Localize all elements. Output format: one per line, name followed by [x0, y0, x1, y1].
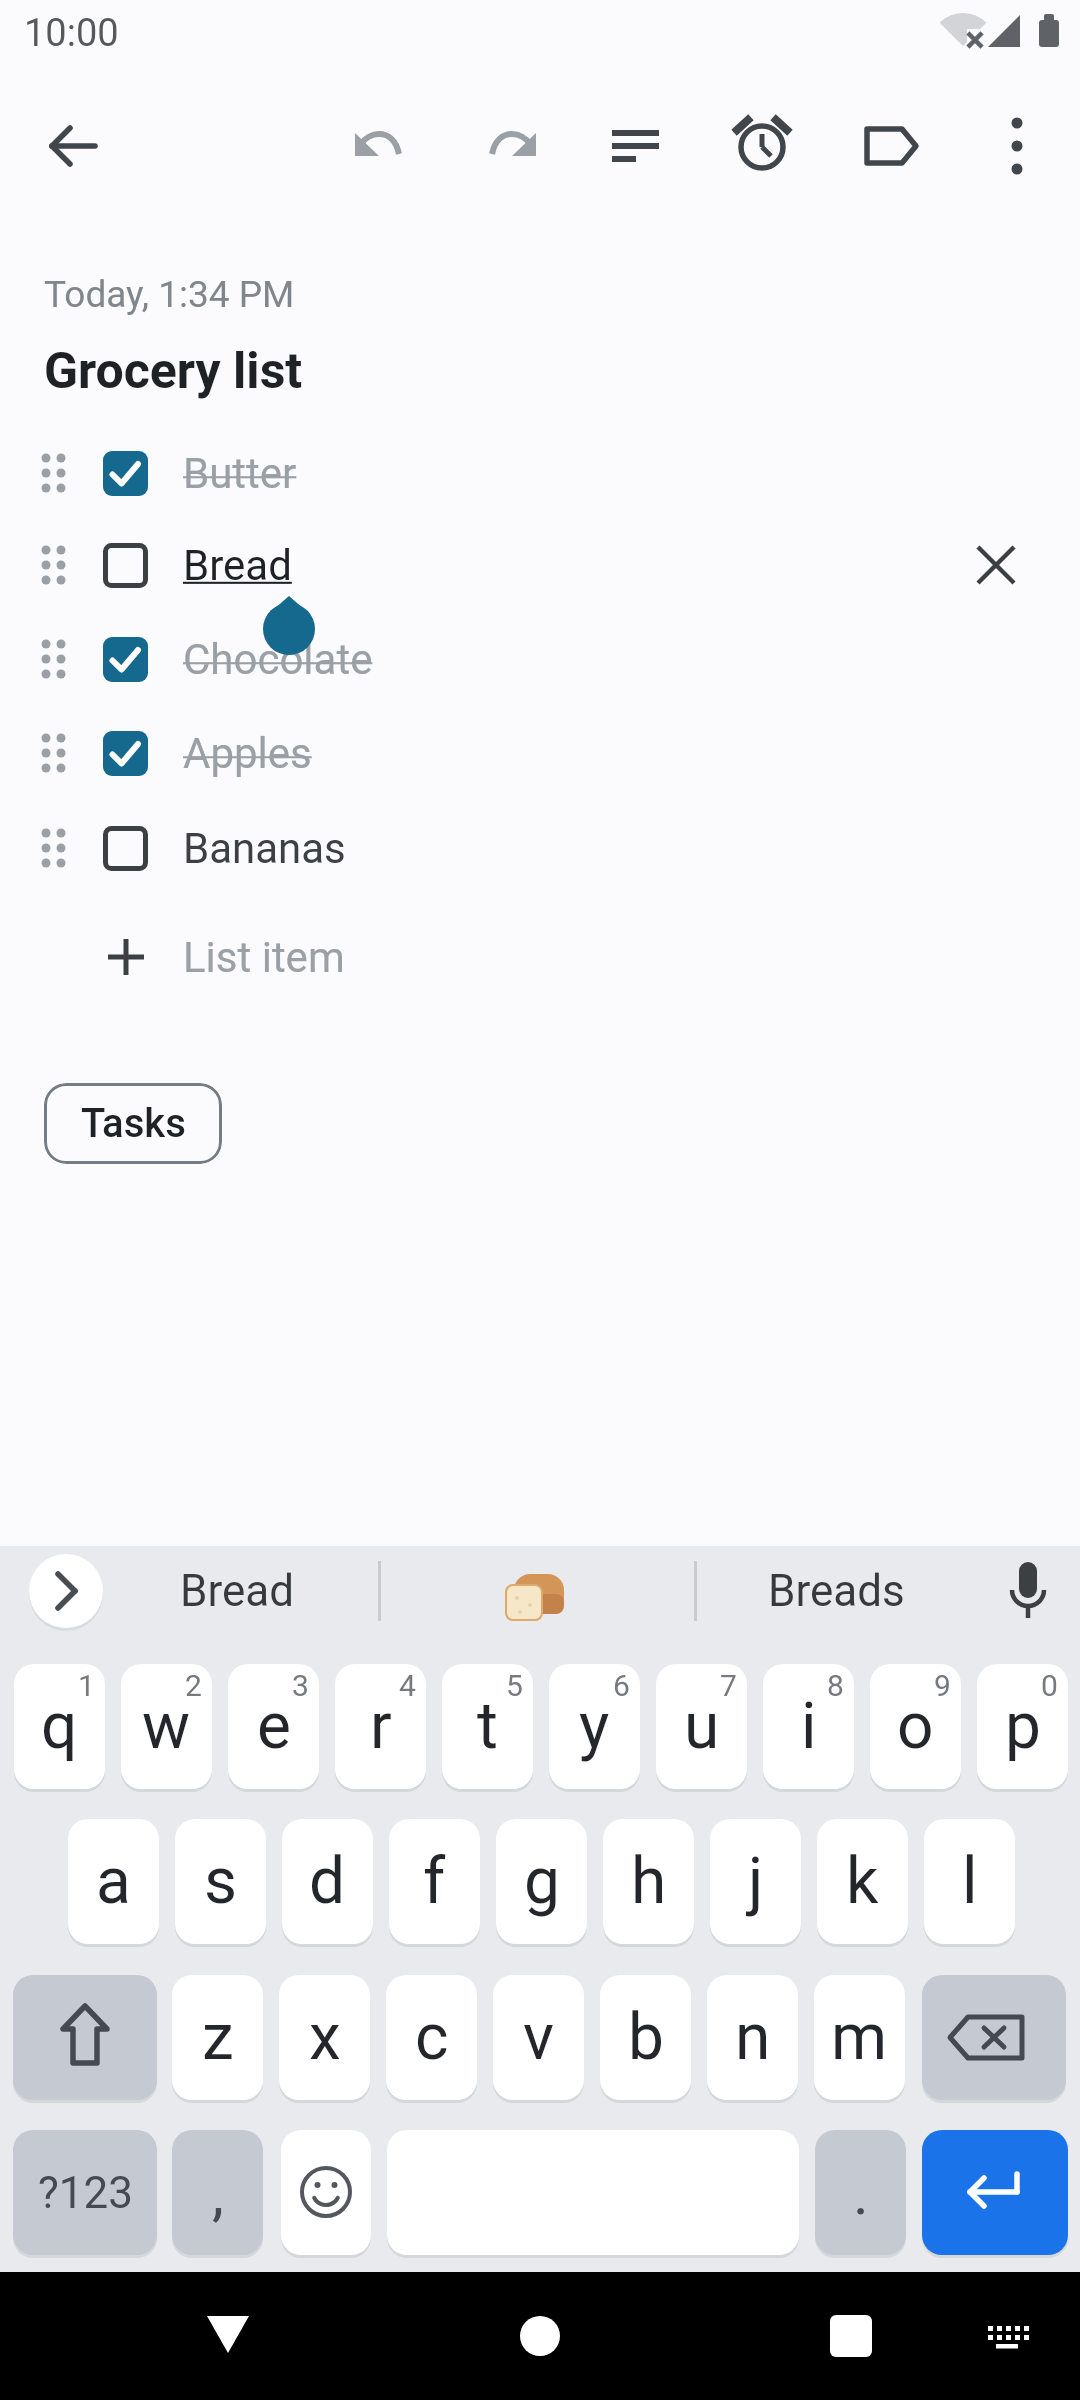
- button[interactable]: [505, 1572, 567, 1622]
- staticText: 8: [827, 1668, 844, 1703]
- staticText: 10:00: [24, 11, 119, 56]
- staticText: d: [309, 1844, 346, 1919]
- button[interactable]: [922, 1975, 1066, 2100]
- staticText: 4: [399, 1668, 416, 1703]
- staticText: e: [257, 1689, 291, 1764]
- staticText: p: [1005, 1689, 1041, 1764]
- button[interactable]: n: [707, 1975, 798, 2100]
- button[interactable]: [281, 2130, 371, 2255]
- button[interactable]: x: [279, 1975, 370, 2100]
- button[interactable]: a: [68, 1819, 159, 1944]
- button[interactable]: Bananas: [0, 801, 1080, 895]
- staticText: f: [423, 1844, 446, 1919]
- staticText: Today, 1:34 PM: [44, 273, 295, 316]
- button[interactable]: ?123: [13, 2130, 157, 2255]
- staticText: z: [202, 2000, 234, 2075]
- button[interactable]: Tasks: [44, 1083, 222, 1164]
- button[interactable]: Bread: [120, 1558, 354, 1624]
- staticText: Bananas: [183, 824, 346, 873]
- button[interactable]: h: [603, 1819, 694, 1944]
- button[interactable]: [980, 1550, 1076, 1634]
- button[interactable]: [25, 98, 121, 194]
- button[interactable]: z: [172, 1975, 263, 2100]
- staticText: g: [524, 1844, 560, 1919]
- button[interactable]: Chocolate: [0, 612, 1080, 706]
- staticText: l: [962, 1844, 978, 1919]
- button[interactable]: b: [600, 1975, 691, 2100]
- button[interactable]: [180, 2288, 276, 2384]
- button[interactable]: [840, 98, 936, 194]
- button[interactable]: e: [228, 1664, 319, 1789]
- button[interactable]: [948, 2288, 1044, 2384]
- staticText: h: [631, 1844, 667, 1919]
- staticText: r: [370, 1689, 392, 1764]
- button[interactable]: [803, 2288, 899, 2384]
- staticText: Bread: [183, 541, 292, 590]
- button[interactable]: f: [389, 1819, 480, 1944]
- button[interactable]: r: [335, 1664, 426, 1789]
- button[interactable]: [29, 1554, 103, 1628]
- button[interactable]: v: [493, 1975, 584, 2100]
- button[interactable]: Apples: [0, 706, 1080, 800]
- staticText: i: [801, 1689, 817, 1764]
- staticText: b: [628, 2000, 664, 2075]
- staticText: Butter: [183, 449, 297, 498]
- staticText: List item: [183, 933, 345, 982]
- staticText: Chocolate: [183, 635, 373, 684]
- button[interactable]: [714, 98, 810, 194]
- button[interactable]: d: [282, 1819, 373, 1944]
- staticText: Tasks: [81, 1100, 186, 1147]
- staticText: Apples: [183, 729, 312, 778]
- staticText: c: [415, 2000, 449, 2075]
- staticText: m: [831, 2000, 888, 2075]
- button[interactable]: [492, 2288, 588, 2384]
- button[interactable]: ,: [172, 2130, 263, 2255]
- staticText: 1: [78, 1668, 95, 1703]
- button[interactable]: List item: [0, 910, 1080, 1004]
- button[interactable]: [460, 98, 556, 194]
- staticText: t: [477, 1689, 498, 1764]
- button[interactable]: p: [977, 1664, 1068, 1789]
- staticText: n: [735, 2000, 771, 2075]
- button[interactable]: [948, 518, 1044, 612]
- button[interactable]: c: [386, 1975, 477, 2100]
- staticText: 9: [934, 1668, 951, 1703]
- staticText: .: [853, 2158, 869, 2228]
- button[interactable]: u: [656, 1664, 747, 1789]
- staticText: q: [41, 1689, 78, 1764]
- button[interactable]: m: [814, 1975, 905, 2100]
- button[interactable]: Bread: [0, 518, 1080, 612]
- staticText: w: [142, 1689, 191, 1764]
- staticText: v: [523, 2000, 554, 2075]
- button[interactable]: Breads: [719, 1558, 953, 1624]
- staticText: j: [748, 1844, 764, 1919]
- button[interactable]: t: [442, 1664, 533, 1789]
- staticText: k: [846, 1844, 879, 1919]
- button[interactable]: l: [924, 1819, 1015, 1944]
- button[interactable]: .: [815, 2130, 906, 2255]
- button[interactable]: k: [817, 1819, 908, 1944]
- button[interactable]: [922, 2130, 1068, 2255]
- button[interactable]: s: [175, 1819, 266, 1944]
- staticText: 3: [292, 1668, 309, 1703]
- button[interactable]: y: [549, 1664, 640, 1789]
- button[interactable]: w: [121, 1664, 212, 1789]
- button[interactable]: o: [870, 1664, 961, 1789]
- button[interactable]: j: [710, 1819, 801, 1944]
- button[interactable]: [588, 98, 684, 194]
- button[interactable]: q: [14, 1664, 105, 1789]
- staticText: a: [96, 1844, 131, 1919]
- staticText: Breads: [768, 1565, 905, 1617]
- button[interactable]: [969, 98, 1065, 194]
- button[interactable]: [335, 98, 431, 194]
- staticText: 5: [506, 1668, 523, 1703]
- staticText: u: [684, 1689, 720, 1764]
- staticText: o: [897, 1689, 934, 1764]
- button[interactable]: Butter: [0, 426, 1080, 520]
- staticText: 2: [185, 1668, 202, 1703]
- button[interactable]: g: [496, 1819, 587, 1944]
- button[interactable]: [13, 1975, 157, 2100]
- button[interactable]: i: [763, 1664, 854, 1789]
- staticText: Grocery list: [44, 342, 303, 401]
